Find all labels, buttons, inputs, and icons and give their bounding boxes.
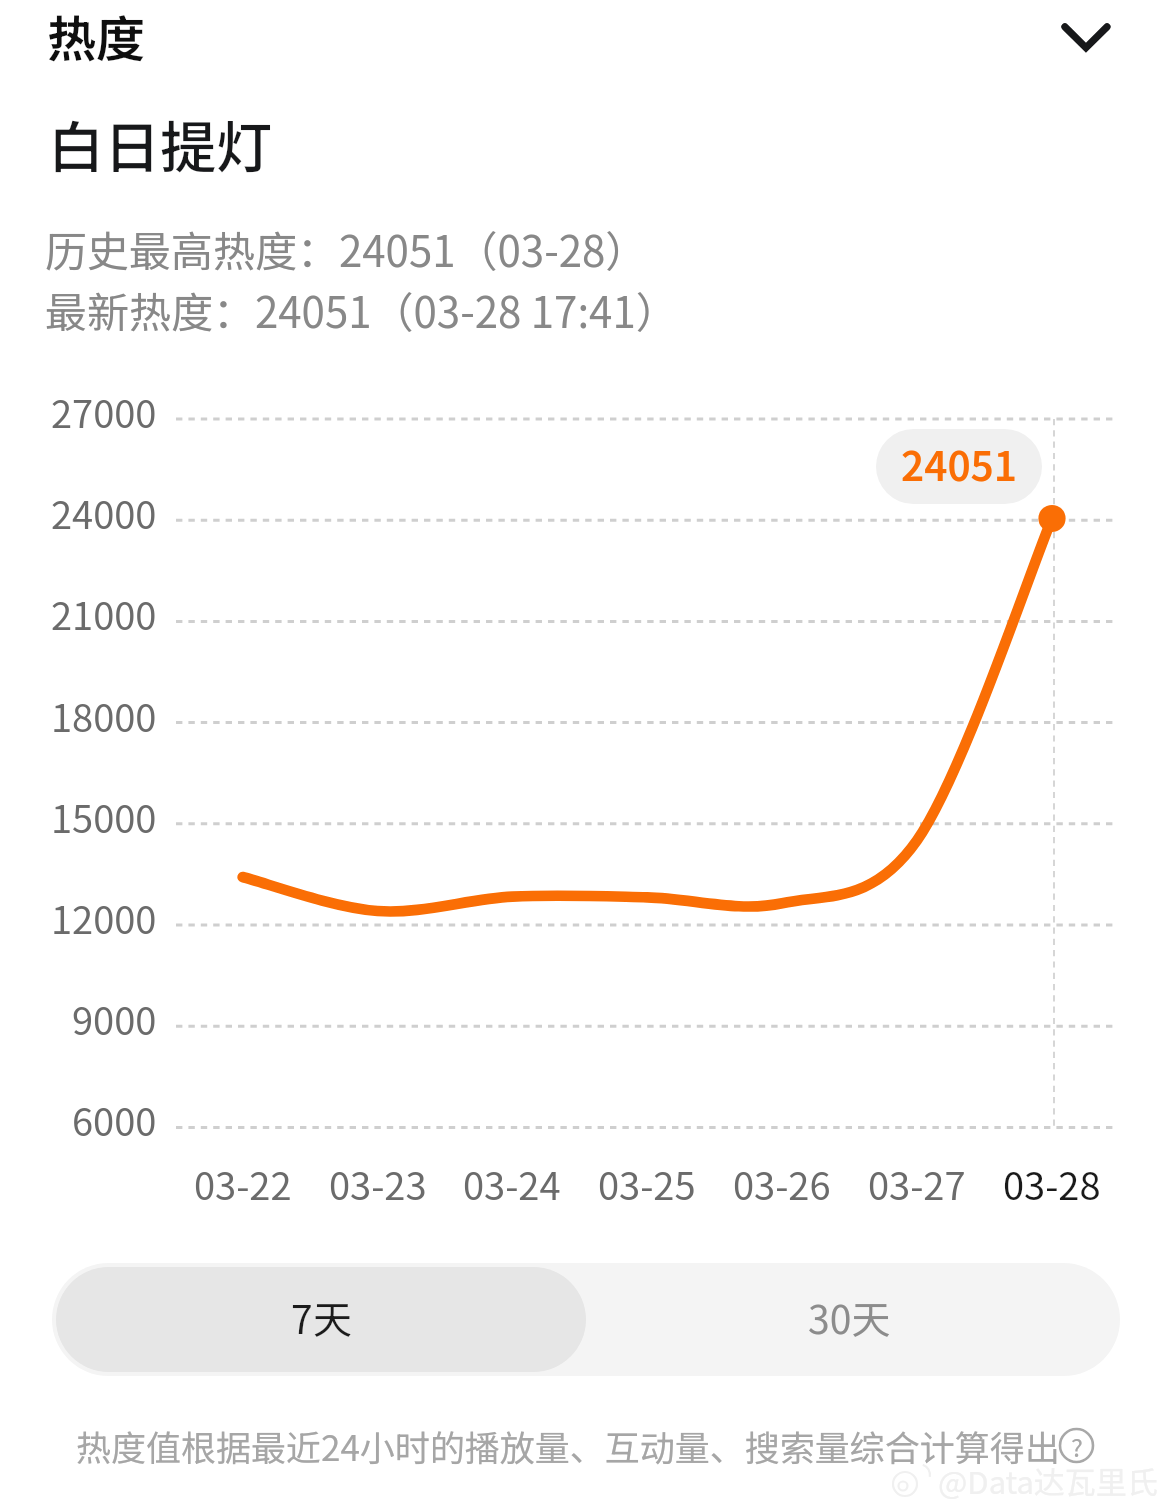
staticText: 21000 [51, 586, 157, 641]
button[interactable]: 30天 [582, 1263, 1116, 1376]
staticText: 03-25 [598, 1156, 696, 1211]
staticText: 03-23 [329, 1156, 427, 1211]
staticText: ? [1071, 1428, 1083, 1464]
staticText: 最新热度：24051（03-28 17:41） [45, 279, 678, 340]
staticText: 27000 [51, 384, 157, 439]
staticText: 7天 [291, 1289, 352, 1345]
staticText: 热度值根据最近24小时的播放量、互动量、搜索量综合计算得出 [76, 1420, 1060, 1471]
staticText: 03-26 [733, 1156, 831, 1211]
staticText: 9000 [72, 991, 157, 1046]
staticText: 18000 [51, 688, 157, 743]
staticText: @Data达瓦里氏 [938, 1458, 1158, 1503]
staticText: 6000 [72, 1092, 157, 1147]
button[interactable]: Collapse [1036, 0, 1132, 96]
staticText: 03-27 [868, 1156, 966, 1211]
button[interactable]: Info [1054, 1423, 1099, 1468]
staticText: 24051 [901, 435, 1017, 493]
button[interactable]: 7天 [56, 1267, 586, 1372]
staticText: 热度 [47, 0, 146, 71]
button[interactable]: 24051 [876, 429, 1042, 504]
staticText: 白日提灯 [48, 103, 272, 184]
staticText: 30天 [808, 1289, 891, 1345]
staticText: 03-22 [194, 1156, 292, 1211]
staticText: 03-24 [463, 1156, 561, 1211]
staticText: 15000 [51, 789, 157, 844]
staticText: 24000 [51, 485, 157, 540]
staticText: 历史最高热度：24051（03-28） [45, 218, 648, 279]
staticText: 12000 [51, 890, 157, 945]
staticText: 03-28 [1003, 1156, 1101, 1211]
